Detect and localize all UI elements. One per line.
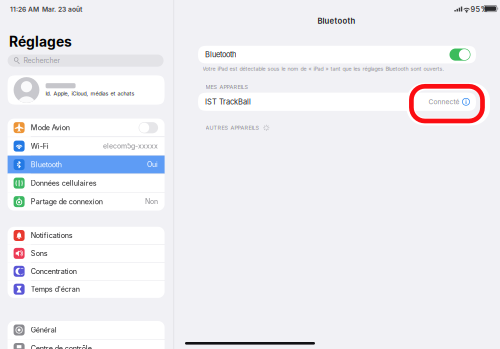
button[interactable]: Temps d'écran xyxy=(8,280,165,298)
staticText: Bluetooth xyxy=(317,16,355,26)
staticText: Mode Avion xyxy=(31,123,70,132)
staticText: 11:26 AM xyxy=(10,5,39,13)
staticText: Concentration xyxy=(31,267,77,276)
staticText: IST TrackBall xyxy=(205,97,251,106)
staticText: Wi-Fi xyxy=(31,142,49,150)
staticText: Connecté xyxy=(428,98,459,106)
staticText: Temps d'écran xyxy=(31,285,80,293)
staticText: elecom5g-xxxxx xyxy=(103,142,158,150)
staticText: Oui xyxy=(147,160,158,169)
staticText: MES APPAREILS xyxy=(205,84,248,90)
staticText: Général xyxy=(31,326,57,334)
button[interactable]: Id. Apple, iCloud, médias et achats xyxy=(8,75,165,105)
button[interactable]: Bluetooth xyxy=(8,156,165,174)
staticText: AUTRES APPAREILS xyxy=(205,124,259,131)
button[interactable]: Wi-Fi xyxy=(8,137,165,155)
staticText: Mar. 23 août xyxy=(42,5,82,13)
staticText: Sons xyxy=(31,249,48,258)
button[interactable]: Partage de connexion xyxy=(8,193,165,211)
staticText: Notifications xyxy=(31,231,73,240)
button[interactable]: Données cellulaires xyxy=(8,174,165,192)
staticText: Rechercher xyxy=(23,56,60,65)
staticText: Bluetooth xyxy=(205,50,236,59)
button[interactable]: Sons xyxy=(8,245,165,262)
button[interactable]: Centre de contrôle xyxy=(8,339,165,349)
staticText: Partage de connexion xyxy=(31,197,103,206)
button[interactable]: IST TrackBall xyxy=(198,93,476,111)
staticText: Non xyxy=(145,197,158,206)
staticText: Réglages xyxy=(9,33,72,50)
staticText: Données cellulaires xyxy=(31,179,97,187)
button[interactable]: Mode Avion xyxy=(8,119,165,137)
button[interactable]: Notifications xyxy=(8,227,165,244)
staticText: Id. Apple, iCloud, médias et achats xyxy=(46,90,135,97)
staticText: Bluetooth xyxy=(31,160,62,169)
staticText: 95% xyxy=(470,5,487,14)
button[interactable]: Concentration xyxy=(8,263,165,280)
staticText: Centre de contrôle xyxy=(31,344,92,349)
staticText: Votre iPad est détectable sous le nom de… xyxy=(202,66,444,72)
button[interactable]: Général xyxy=(8,321,165,339)
